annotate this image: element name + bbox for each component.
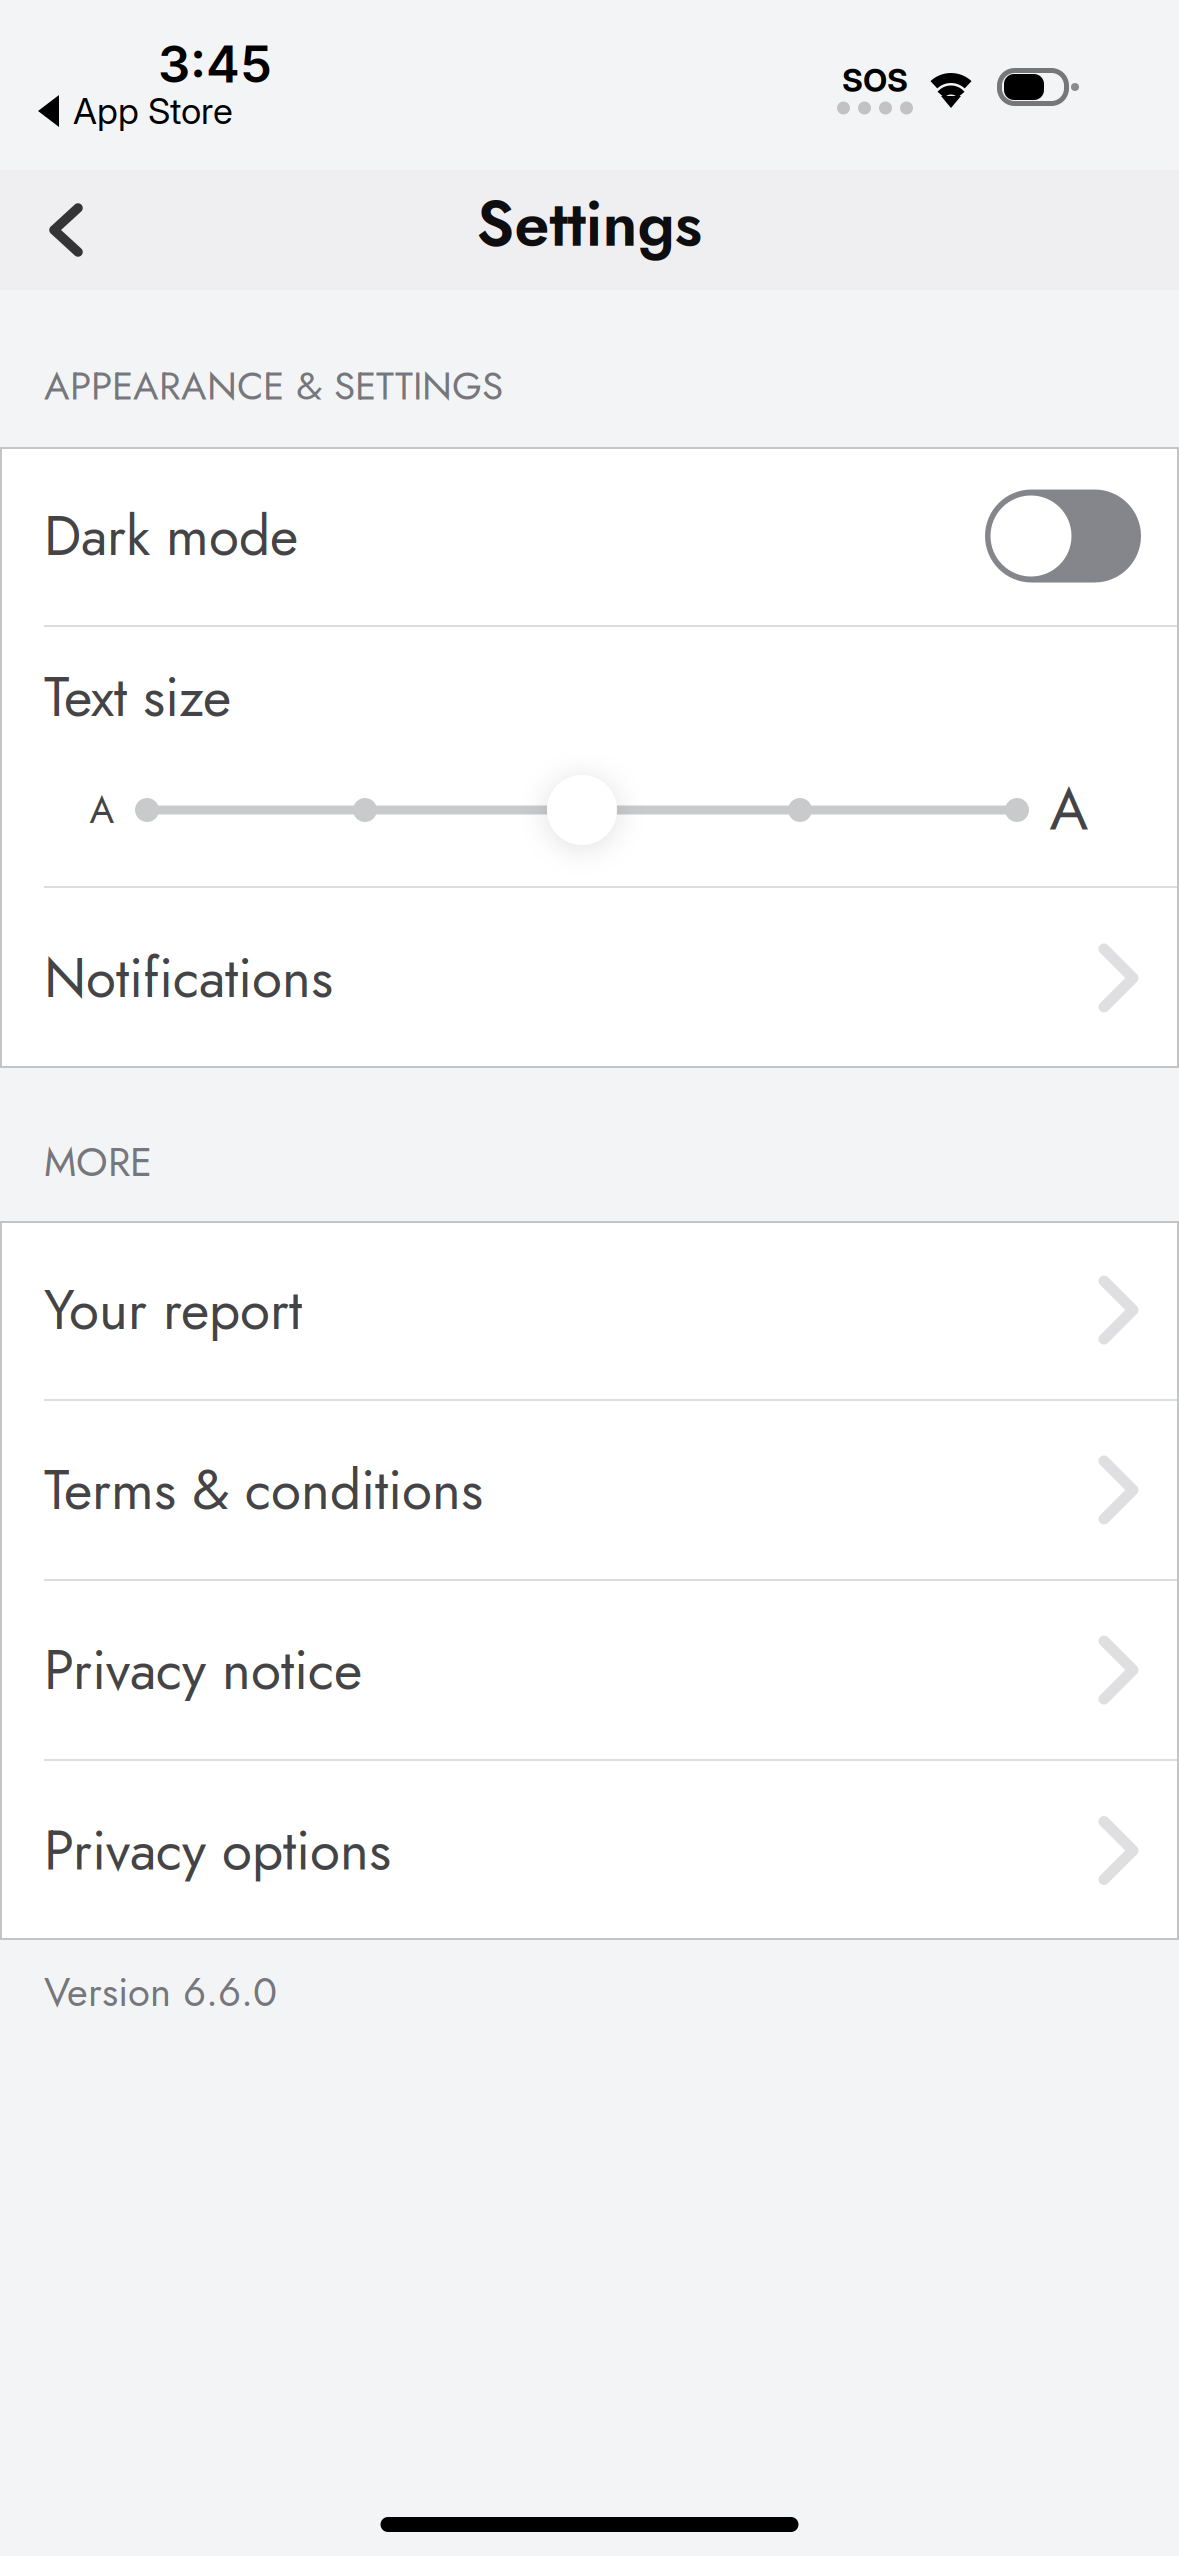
button[interactable]: Text size (0, 760, 1179, 860)
staticText: A (1049, 767, 1088, 851)
staticText: Your report (44, 1270, 302, 1349)
staticText: Terms & conditions (44, 1450, 483, 1529)
staticText: A (89, 783, 114, 837)
staticText: Settings (476, 179, 702, 269)
staticText: Text size (44, 657, 231, 736)
button[interactable]: Terms & conditions (0, 1401, 1179, 1579)
button[interactable]: Dark mode (0, 447, 1179, 625)
staticText: SOS (842, 61, 908, 99)
staticText: Privacy options (44, 1811, 391, 1890)
staticText: 3:45 (158, 33, 272, 95)
button[interactable]: Back (0, 170, 132, 290)
staticText: Dark mode (44, 496, 298, 575)
staticText: APPEARANCE & SETTINGS (44, 358, 503, 414)
staticText: Privacy notice (44, 1630, 362, 1709)
button[interactable]: Privacy options (0, 1761, 1179, 1940)
staticText: MORE (44, 1133, 152, 1191)
button[interactable]: Privacy notice (0, 1581, 1179, 1759)
staticText: Version 6.6.0 (44, 1963, 277, 2021)
button[interactable]: App Store (37, 84, 437, 138)
staticText: Notifications (44, 938, 333, 1017)
staticText: App Store (73, 89, 233, 133)
button[interactable]: Your report (0, 1221, 1179, 1399)
button[interactable]: Notifications (0, 888, 1179, 1068)
